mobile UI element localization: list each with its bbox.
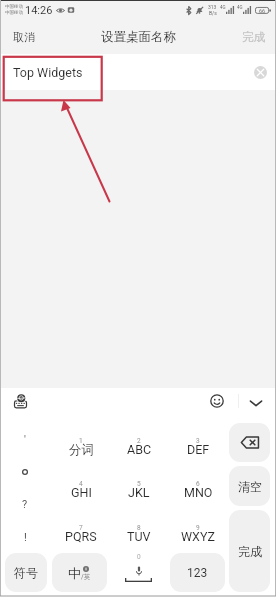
staticText: 6 bbox=[196, 480, 200, 488]
staticText: TUV bbox=[127, 529, 151, 544]
button[interactable]: Emoji bbox=[206, 390, 228, 412]
button[interactable]: ' bbox=[11, 428, 39, 450]
staticText: ' bbox=[24, 433, 26, 446]
button[interactable]: Clear text bbox=[252, 64, 268, 80]
button[interactable]: ! bbox=[11, 526, 39, 548]
staticText: 123 bbox=[187, 566, 208, 580]
staticText: 0 bbox=[137, 553, 141, 561]
staticText: 3 bbox=[196, 437, 200, 445]
button[interactable]: Space and voice input bbox=[112, 553, 165, 592]
staticText: 4 bbox=[79, 480, 83, 488]
staticText: DEF bbox=[187, 442, 210, 457]
button[interactable]: Hide keyboard bbox=[243, 390, 269, 416]
button[interactable]: 3 bbox=[170, 424, 226, 467]
button[interactable]: 8 bbox=[111, 511, 167, 554]
button[interactable]: Backspace bbox=[229, 423, 270, 462]
staticText: 符号 bbox=[14, 565, 38, 580]
staticText: 1 bbox=[79, 437, 83, 445]
staticText: /英 bbox=[81, 573, 91, 581]
button[interactable]: 6 bbox=[170, 467, 226, 510]
staticText: 完成 bbox=[242, 30, 265, 44]
staticText: 中 bbox=[68, 565, 81, 581]
staticText: JKL bbox=[128, 485, 150, 500]
staticText: Top Widgets bbox=[13, 65, 83, 80]
button[interactable]: 9 bbox=[170, 511, 226, 554]
button[interactable]: 取消 bbox=[0, 20, 48, 54]
button[interactable]: 5 bbox=[111, 467, 167, 510]
staticText: 分词 bbox=[69, 442, 94, 458]
button[interactable]: 1 bbox=[53, 424, 109, 467]
staticText: ABC bbox=[127, 442, 152, 457]
staticText: ! bbox=[24, 531, 27, 544]
staticText: MNO bbox=[184, 485, 213, 500]
staticText: 8 bbox=[137, 524, 141, 532]
button[interactable] bbox=[11, 461, 39, 483]
staticText: 66 bbox=[259, 8, 266, 14]
button[interactable]: 2 bbox=[111, 424, 167, 467]
button[interactable]: Chinese English toggle bbox=[52, 553, 107, 592]
button[interactable]: 清空 bbox=[229, 466, 270, 506]
button[interactable]: 完成 bbox=[231, 20, 276, 54]
staticText: 中国移动 bbox=[5, 4, 23, 10]
staticText: 4G bbox=[220, 5, 226, 10]
staticText: WXYZ bbox=[181, 529, 215, 544]
button[interactable]: ? bbox=[11, 493, 39, 515]
staticText: 14:26 bbox=[25, 4, 53, 17]
staticText: GHI bbox=[71, 485, 92, 500]
staticText: B/s bbox=[209, 10, 217, 16]
staticText: 4G bbox=[237, 5, 243, 10]
button[interactable]: 完成 bbox=[229, 510, 270, 592]
button[interactable]: Top Widgets bbox=[0, 54, 276, 90]
staticText: 完成 bbox=[238, 544, 262, 559]
staticText: 设置桌面名称 bbox=[101, 29, 176, 45]
staticText: PQRS bbox=[65, 529, 97, 544]
button[interactable]: 符号 bbox=[5, 553, 47, 592]
staticText: 取消 bbox=[13, 30, 35, 44]
button[interactable]: 7 bbox=[53, 511, 109, 554]
staticText: 清空 bbox=[238, 479, 262, 494]
staticText: 中国移动 bbox=[5, 10, 23, 16]
staticText: 2 bbox=[137, 437, 141, 445]
staticText: 313 bbox=[208, 4, 217, 10]
staticText: ? bbox=[22, 498, 28, 511]
staticText: 5 bbox=[137, 480, 141, 488]
button[interactable]: 123 bbox=[170, 553, 225, 592]
button[interactable]: Switch input method bbox=[10, 391, 30, 411]
staticText: 7 bbox=[79, 524, 83, 532]
button[interactable]: 4 bbox=[53, 467, 109, 510]
staticText: 9 bbox=[196, 524, 200, 532]
